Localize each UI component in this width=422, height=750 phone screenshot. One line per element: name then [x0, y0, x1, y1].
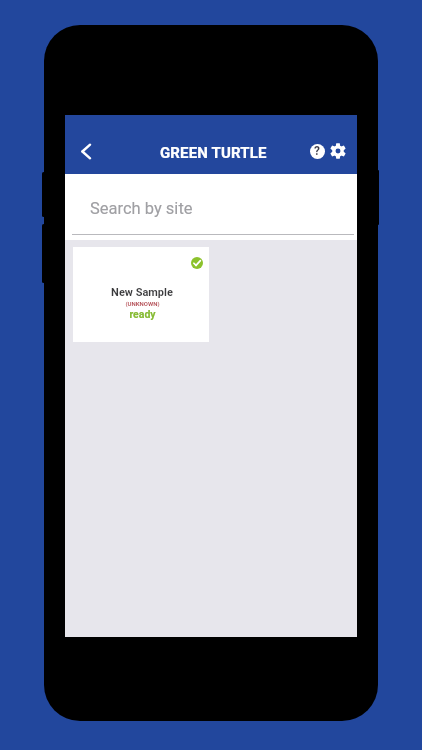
- staticText: GREEN TURTLE: [160, 144, 267, 162]
- staticText: (UNKNOWN): [125, 300, 160, 307]
- button[interactable]: Help: [307, 141, 327, 161]
- button[interactable]: Search by site: [65, 174, 357, 240]
- button[interactable]: Ready: [73, 247, 209, 342]
- staticText: New Sample: [111, 286, 173, 299]
- staticText: ready: [129, 308, 156, 320]
- staticText: Search by site: [90, 199, 193, 218]
- other: Ready: [191, 257, 203, 269]
- button[interactable]: Back: [67, 132, 105, 170]
- button[interactable]: Settings: [328, 141, 348, 161]
- staticText: ?: [314, 144, 320, 158]
